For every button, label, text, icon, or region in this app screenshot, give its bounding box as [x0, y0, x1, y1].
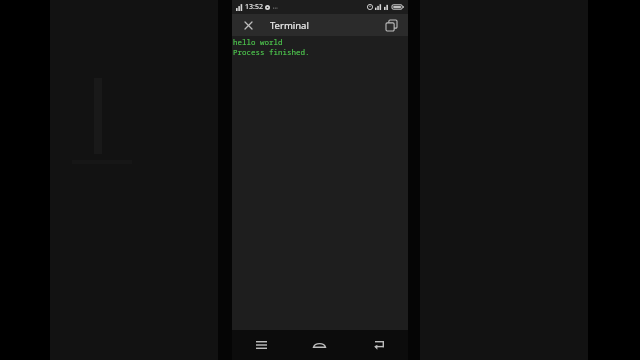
button[interactable]: Copy [382, 16, 400, 34]
staticText: 13:52 [245, 2, 263, 12]
staticText: hello world [233, 37, 283, 47]
staticText: Process finished. [233, 47, 310, 57]
staticText: Terminal [270, 19, 309, 32]
button[interactable]: Home [290, 330, 349, 360]
button[interactable]: Close [240, 17, 256, 33]
button[interactable]: Recent apps [232, 330, 290, 360]
button[interactable]: Back [349, 330, 408, 360]
